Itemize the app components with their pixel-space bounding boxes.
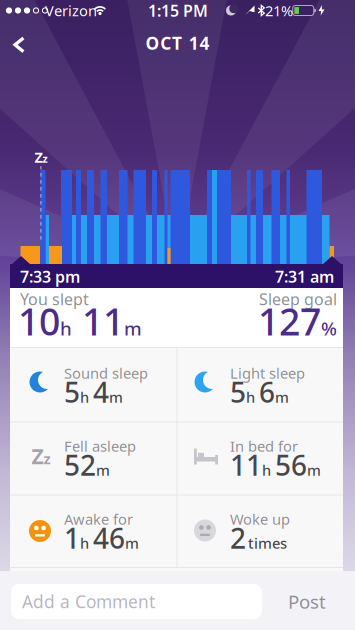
staticText: 52m — [64, 446, 110, 484]
staticText: Light sleep — [230, 363, 305, 383]
staticText: 5h 6m — [230, 373, 289, 411]
staticText: 7:31 am — [275, 266, 334, 287]
staticText: Post — [288, 589, 326, 614]
button[interactable]: Back — [6, 30, 32, 60]
staticText: Zz — [34, 147, 47, 167]
staticText: OCT 14 — [145, 31, 209, 54]
staticText: 2 times — [230, 519, 287, 557]
staticText: 1h 46m — [64, 519, 139, 557]
staticText: 127% — [258, 296, 337, 346]
staticText: 11h 56m — [230, 446, 321, 484]
button[interactable]: Add a Comment — [11, 584, 262, 619]
staticText: In bed for — [230, 436, 298, 456]
staticText: 1:15 PM — [148, 0, 208, 21]
staticText: 7:33 pm — [20, 266, 80, 287]
staticText: You slept — [20, 288, 89, 310]
staticText: Add a Comment — [22, 590, 155, 613]
staticText: 5h 4m — [64, 373, 123, 411]
staticText: 21% — [265, 1, 293, 20]
button[interactable]: Post — [277, 584, 337, 619]
staticText: Sleep goal — [259, 288, 337, 310]
staticText: Fell asleep — [64, 436, 136, 456]
staticText: Zz — [31, 442, 50, 470]
staticText: 10h 11m — [18, 296, 142, 346]
staticText: Sound sleep — [64, 363, 148, 383]
staticText: Woke up — [230, 509, 290, 529]
staticText: Verizon — [45, 1, 97, 20]
staticText: Awake for — [64, 509, 133, 529]
